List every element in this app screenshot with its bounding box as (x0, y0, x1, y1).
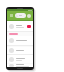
button[interactable] (7, 47, 33, 54)
button[interactable]: Account (27, 14, 31, 18)
button[interactable] (7, 22, 33, 30)
button[interactable]: Open navigation menu (9, 13, 14, 18)
button[interactable] (7, 37, 33, 44)
button[interactable] (7, 64, 33, 67)
button[interactable] (15, 13, 26, 18)
button[interactable] (7, 55, 33, 63)
